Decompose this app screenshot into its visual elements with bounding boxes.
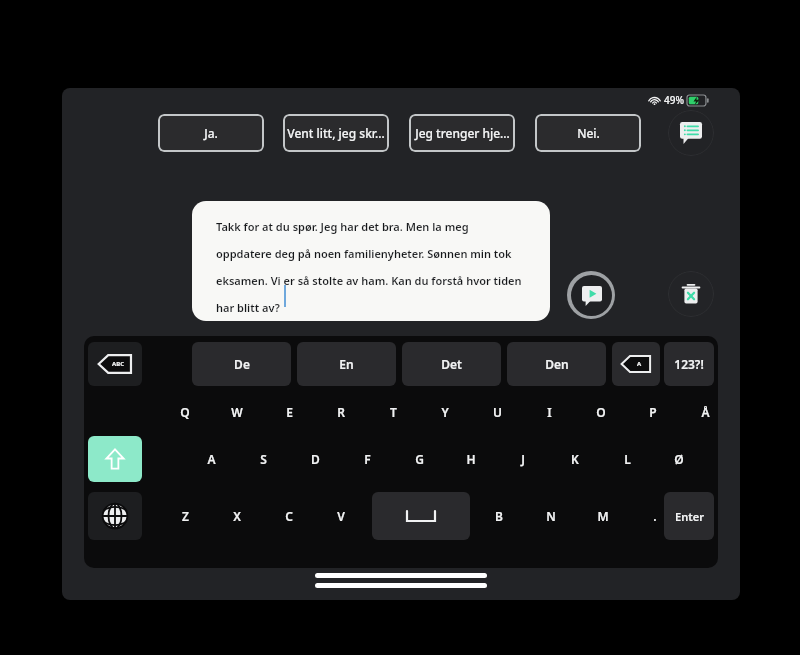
button[interactable]: O xyxy=(580,392,622,432)
staticText: 123?! xyxy=(674,356,704,372)
staticText: Z xyxy=(182,508,189,524)
staticText: L xyxy=(624,451,631,467)
button[interactable]: Change language xyxy=(88,492,142,540)
staticText: har blitt av? xyxy=(216,300,280,315)
button[interactable]: En xyxy=(297,342,396,386)
button[interactable]: Vent litt, jeg skr… xyxy=(283,114,389,152)
staticText: Ja. xyxy=(204,125,218,141)
button[interactable]: Jeg trenger hje… xyxy=(409,114,515,152)
staticText: C xyxy=(285,508,293,524)
staticText: Den xyxy=(545,356,569,372)
staticText: Vent litt, jeg skr… xyxy=(287,125,385,141)
staticText: U xyxy=(493,404,502,420)
staticText: N xyxy=(546,508,556,524)
button[interactable]: B xyxy=(478,496,520,536)
button[interactable]: Backspace xyxy=(612,342,660,386)
button[interactable]: Det xyxy=(402,342,501,386)
staticText: A xyxy=(637,360,642,368)
button[interactable]: Shift xyxy=(88,436,142,482)
button[interactable]: Space xyxy=(372,492,470,540)
button[interactable]: Q xyxy=(164,392,206,432)
button[interactable]: Nei. xyxy=(535,114,641,152)
button[interactable]: Speak message xyxy=(567,271,615,319)
staticText: D xyxy=(311,451,320,467)
staticText: E xyxy=(286,404,293,420)
staticText: En xyxy=(339,356,354,372)
staticText: . xyxy=(653,508,657,524)
staticText: Y xyxy=(441,404,449,420)
button[interactable]: V xyxy=(320,496,362,536)
button[interactable]: Å xyxy=(684,392,718,432)
button[interactable]: X xyxy=(216,496,258,536)
staticText: A xyxy=(207,451,216,467)
staticText: G xyxy=(415,451,424,467)
staticText: I xyxy=(547,404,552,420)
staticText: J xyxy=(521,451,525,467)
staticText: B xyxy=(495,508,503,524)
button[interactable]: T xyxy=(372,392,414,432)
button[interactable]: Ja. xyxy=(158,114,264,152)
button[interactable]: P xyxy=(632,392,674,432)
button[interactable]: Z xyxy=(164,496,206,536)
staticText: Q xyxy=(180,404,190,420)
button[interactable]: H xyxy=(450,439,492,479)
button[interactable]: N xyxy=(530,496,572,536)
button[interactable]: M xyxy=(582,496,624,536)
staticText: ABC xyxy=(112,360,124,368)
button[interactable]: Delete xyxy=(668,271,714,317)
staticText: Jeg trenger hje… xyxy=(415,125,510,141)
button[interactable]: 123?! xyxy=(664,342,714,386)
staticText: Nei. xyxy=(577,125,600,141)
button[interactable]: C xyxy=(268,496,310,536)
button[interactable]: R xyxy=(320,392,362,432)
button[interactable]: F xyxy=(346,439,388,479)
staticText: Å xyxy=(701,404,710,420)
staticText: Det xyxy=(441,356,462,372)
staticText: T xyxy=(390,404,397,420)
button[interactable]: A xyxy=(190,439,232,479)
button[interactable]: E xyxy=(268,392,310,432)
button[interactable]: . xyxy=(634,496,676,536)
button[interactable]: W xyxy=(216,392,258,432)
staticText: M xyxy=(597,508,609,524)
button[interactable]: Den xyxy=(507,342,606,386)
staticText: O xyxy=(596,404,606,420)
staticText: H xyxy=(466,451,476,467)
staticText: S xyxy=(260,451,267,467)
button[interactable]: S xyxy=(242,439,284,479)
staticText: De xyxy=(234,356,250,372)
staticText: oppdatere deg på noen familienyheter. Sø… xyxy=(216,246,512,261)
staticText: Ø xyxy=(674,451,684,467)
button[interactable]: L xyxy=(606,439,648,479)
button[interactable]: Messages xyxy=(668,110,714,156)
staticText: R xyxy=(337,404,345,420)
staticText: P xyxy=(649,404,657,420)
button[interactable]: I xyxy=(528,392,570,432)
button[interactable]: ABC backspace xyxy=(88,342,142,386)
button[interactable]: J xyxy=(502,439,544,479)
button[interactable]: U xyxy=(476,392,518,432)
button[interactable]: Ø xyxy=(658,439,700,479)
staticText: Enter xyxy=(675,509,704,524)
staticText: 49% xyxy=(664,93,684,107)
button[interactable]: D xyxy=(294,439,336,479)
button[interactable]: K xyxy=(554,439,596,479)
staticText: V xyxy=(337,508,345,524)
staticText: X xyxy=(233,508,241,524)
staticText: eksamen. Vi er så stolte av ham. Kan du … xyxy=(216,273,522,288)
button[interactable]: G xyxy=(398,439,440,479)
staticText: K xyxy=(571,451,579,467)
staticText: Takk for at du spør. Jeg har det bra. Me… xyxy=(216,219,469,234)
button[interactable]: Y xyxy=(424,392,466,432)
button[interactable]: Enter xyxy=(664,492,714,540)
staticText: F xyxy=(364,451,371,467)
staticText: W xyxy=(231,404,243,420)
button[interactable]: De xyxy=(192,342,291,386)
